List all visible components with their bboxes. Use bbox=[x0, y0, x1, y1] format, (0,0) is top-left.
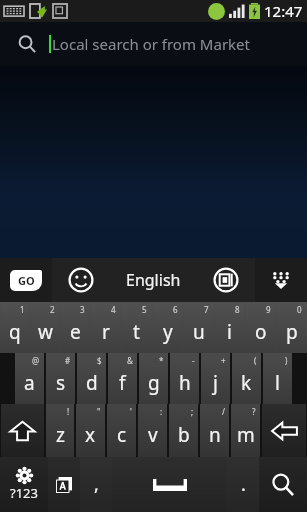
staticText: 4 bbox=[111, 304, 116, 315]
staticText: Local search or from Market bbox=[52, 34, 250, 54]
button[interactable]: 6 bbox=[153, 302, 182, 353]
staticText: 0 bbox=[297, 304, 302, 315]
button[interactable]: Emoji bbox=[52, 258, 110, 302]
button[interactable]: Space bbox=[112, 457, 227, 512]
button[interactable]: Input language bbox=[48, 457, 80, 512]
staticText: 2 bbox=[50, 304, 55, 315]
staticText: r bbox=[102, 319, 110, 345]
button[interactable]: : bbox=[138, 404, 167, 457]
button[interactable]: ) bbox=[263, 353, 292, 404]
staticText: j bbox=[213, 370, 218, 396]
staticText: e bbox=[70, 319, 81, 345]
staticText: " bbox=[97, 406, 101, 417]
staticText: k bbox=[241, 370, 252, 396]
button[interactable]: 1 bbox=[1, 302, 29, 353]
staticText: t bbox=[133, 319, 140, 345]
staticText: ( bbox=[254, 355, 257, 366]
staticText: x bbox=[85, 422, 96, 448]
staticText: b bbox=[178, 422, 190, 448]
staticText: # bbox=[65, 355, 71, 366]
button[interactable]: ! bbox=[46, 404, 74, 457]
staticText: 5 bbox=[142, 304, 147, 315]
button[interactable]: 4 bbox=[91, 302, 120, 353]
button[interactable]: / bbox=[200, 404, 229, 457]
staticText: ? bbox=[252, 406, 256, 417]
button[interactable]: @ bbox=[15, 353, 44, 404]
staticText: ; bbox=[191, 406, 194, 417]
staticText: w bbox=[38, 319, 53, 345]
staticText: English bbox=[126, 269, 181, 291]
staticText: 9 bbox=[266, 304, 271, 315]
staticText: 8 bbox=[235, 304, 240, 315]
button[interactable]: Switch layout bbox=[197, 258, 255, 302]
button[interactable]: Backspace bbox=[262, 404, 306, 457]
staticText: 1 bbox=[20, 304, 25, 315]
button[interactable]: Symbols and settings bbox=[0, 457, 48, 512]
button[interactable]: 8 bbox=[215, 302, 244, 353]
staticText: , bbox=[94, 472, 99, 497]
button[interactable]: 7 bbox=[184, 302, 213, 353]
button[interactable]: + bbox=[201, 353, 230, 404]
staticText: y bbox=[163, 319, 173, 345]
staticText: . bbox=[241, 472, 246, 497]
button[interactable]: More bbox=[255, 258, 307, 302]
staticText: / bbox=[222, 406, 225, 417]
button[interactable]: * bbox=[139, 353, 168, 404]
staticText: p bbox=[286, 319, 298, 345]
staticText: $ bbox=[97, 355, 102, 366]
staticText: f bbox=[119, 370, 126, 396]
staticText: q bbox=[9, 319, 21, 345]
button[interactable]: , bbox=[80, 457, 112, 512]
staticText: o bbox=[255, 319, 267, 345]
staticText: 6 bbox=[173, 304, 178, 315]
staticText: n bbox=[209, 422, 221, 448]
button[interactable]: " bbox=[76, 404, 105, 457]
button[interactable]: 3 bbox=[61, 302, 89, 353]
button[interactable]: English bbox=[110, 258, 197, 302]
staticText: z bbox=[56, 422, 65, 448]
staticText: s bbox=[56, 370, 66, 396]
staticText: a bbox=[24, 370, 35, 396]
staticText: 7 bbox=[204, 304, 209, 315]
button[interactable]: - bbox=[170, 353, 199, 404]
staticText: 12:47 bbox=[264, 1, 303, 21]
staticText: * bbox=[159, 355, 164, 366]
button[interactable]: 5 bbox=[122, 302, 151, 353]
button[interactable]: ( bbox=[232, 353, 261, 404]
button[interactable]: ; bbox=[169, 404, 198, 457]
staticText: & bbox=[127, 355, 133, 366]
staticText: GO bbox=[18, 273, 35, 288]
button[interactable]: $ bbox=[77, 353, 106, 404]
button[interactable]: Go bbox=[0, 258, 52, 302]
button[interactable]: Shift bbox=[1, 404, 44, 457]
staticText: ) bbox=[285, 355, 288, 366]
staticText: ' bbox=[130, 406, 132, 417]
staticText: @ bbox=[32, 355, 40, 366]
staticText: d bbox=[86, 370, 98, 396]
staticText: - bbox=[192, 355, 195, 366]
staticText: + bbox=[221, 355, 226, 366]
staticText: i bbox=[227, 319, 232, 345]
staticText: u bbox=[193, 319, 205, 345]
button[interactable]: # bbox=[46, 353, 75, 404]
staticText: m bbox=[237, 422, 255, 448]
staticText: c bbox=[117, 422, 127, 448]
staticText: ! bbox=[67, 406, 70, 417]
button[interactable]: 2 bbox=[31, 302, 59, 353]
button[interactable]: ' bbox=[107, 404, 136, 457]
button[interactable]: & bbox=[108, 353, 137, 404]
staticText: ?123 bbox=[10, 484, 38, 502]
staticText: g bbox=[148, 370, 160, 396]
button[interactable]: Search bbox=[259, 457, 307, 512]
staticText: : bbox=[160, 406, 163, 417]
button[interactable]: Local search or from Market bbox=[0, 22, 307, 66]
button[interactable]: 0 bbox=[277, 302, 306, 353]
button[interactable]: ? bbox=[231, 404, 260, 457]
button[interactable]: . bbox=[227, 457, 259, 512]
staticText: v bbox=[148, 422, 158, 448]
staticText: 3 bbox=[80, 304, 85, 315]
staticText: l bbox=[275, 370, 280, 396]
button[interactable]: 9 bbox=[246, 302, 275, 353]
staticText: h bbox=[179, 370, 191, 396]
